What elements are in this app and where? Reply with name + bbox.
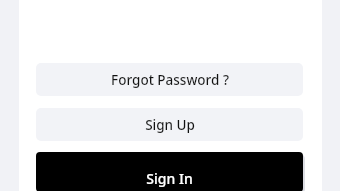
staticText: Forgot Password ?	[111, 71, 229, 89]
button[interactable]: Forgot Password ?	[36, 63, 303, 96]
button[interactable]: Sign In	[36, 152, 303, 191]
staticText: Sign Up	[145, 116, 195, 134]
staticText: Sign In	[146, 169, 193, 188]
button[interactable]: Sign Up	[36, 108, 303, 141]
